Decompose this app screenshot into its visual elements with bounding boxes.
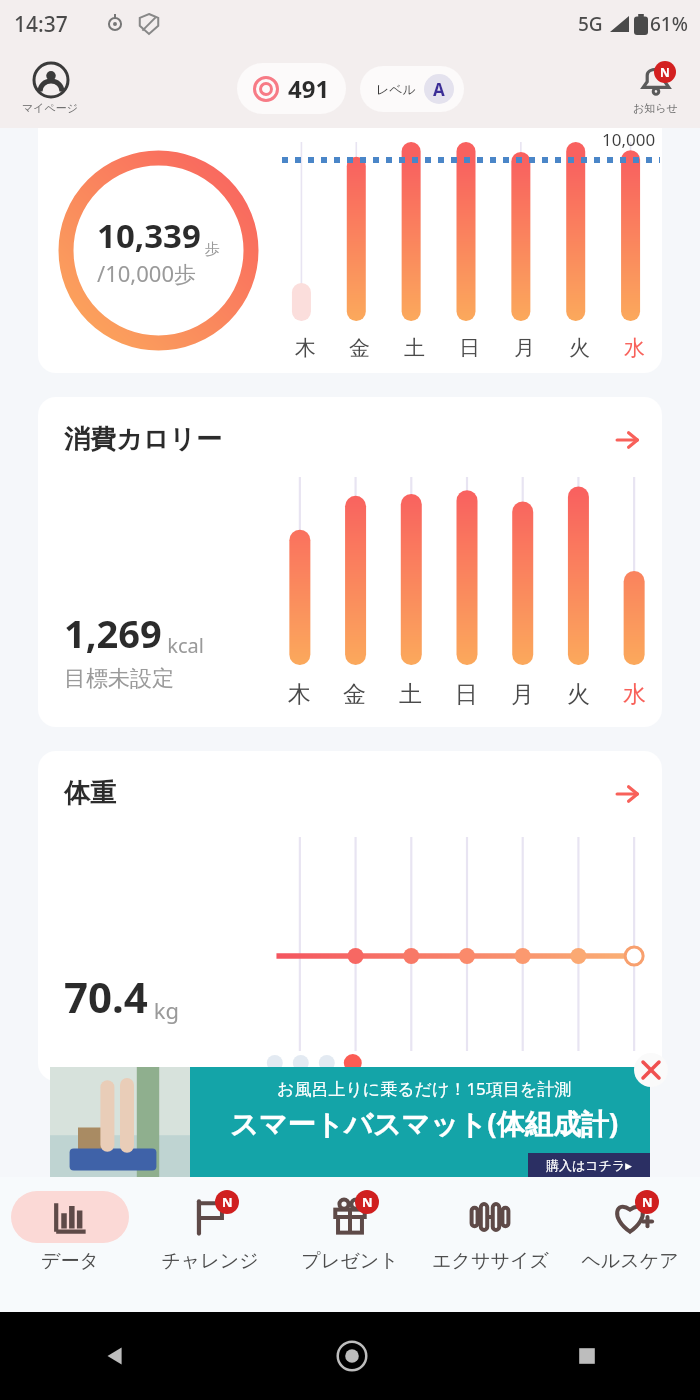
staticText: N [660, 64, 670, 80]
button[interactable]: Recents [574, 1343, 600, 1369]
button[interactable]: 体重 [38, 751, 662, 1081]
staticText: お知らせ [633, 101, 678, 115]
staticText: 61% [650, 11, 688, 37]
staticText: データ [41, 1249, 99, 1273]
staticText: N [642, 1193, 653, 1211]
staticText: kg [148, 995, 179, 1025]
button[interactable]: 10,339 [38, 128, 662, 373]
staticText: 購入はコチラ▸ [546, 1157, 632, 1173]
staticText: 火 [569, 335, 590, 361]
staticText: N [222, 1193, 233, 1211]
staticText: 金 [349, 335, 370, 361]
staticText: レベル [376, 81, 416, 97]
staticText: スマートバスマット(体組成計) [230, 1104, 619, 1142]
staticText: 水 [623, 680, 646, 709]
staticText: 目標未設定 [64, 665, 174, 693]
staticText: 日 [455, 680, 478, 709]
staticText: 水 [624, 335, 645, 361]
staticText: 消費カロリー [64, 423, 222, 456]
staticText: 14:37 [14, 10, 68, 39]
staticText: 10,000 [602, 128, 656, 151]
staticText: 火 [567, 680, 590, 709]
button[interactable]: N [560, 1177, 700, 1312]
staticText: 月 [511, 680, 534, 709]
staticText: 土 [404, 335, 425, 361]
button[interactable]: レベル [360, 66, 464, 112]
button[interactable]: 491 [237, 63, 346, 114]
button[interactable]: N [140, 1177, 280, 1312]
other: 詳細 [614, 781, 640, 807]
staticText: 月 [514, 335, 535, 361]
staticText: 歩 [201, 238, 220, 258]
button[interactable]: お風呂上りに乗るだけ！15項目を計測 [50, 1067, 650, 1177]
staticText: ヘルスケア [581, 1249, 679, 1273]
staticText: 491 [288, 72, 330, 105]
staticText: 木 [288, 680, 311, 709]
staticText: エクササイズ [432, 1249, 549, 1273]
staticText: 金 [343, 680, 366, 709]
staticText: 木 [295, 335, 316, 361]
staticText: 体重 [64, 777, 116, 810]
button[interactable]: N [280, 1177, 420, 1312]
staticText: プレゼント [301, 1249, 399, 1273]
staticText: N [362, 1193, 373, 1211]
button[interactable]: エクササイズ [420, 1177, 560, 1312]
button[interactable]: Back [100, 1341, 130, 1371]
staticText: チャレンジ [161, 1249, 259, 1273]
button[interactable]: マイページ [18, 57, 83, 119]
button[interactable]: お知らせ [629, 57, 682, 119]
button[interactable]: Home [335, 1339, 369, 1373]
button[interactable]: 閉じる [634, 1053, 668, 1087]
staticText: /10,000歩 [97, 258, 197, 288]
staticText: 70.4 [64, 968, 148, 1025]
other: 詳細 [614, 427, 640, 453]
staticText: A [433, 78, 445, 101]
staticText: kcal [162, 632, 204, 659]
button[interactable]: 消費カロリー [38, 397, 662, 727]
staticText: マイページ [22, 101, 79, 115]
staticText: 日 [459, 335, 480, 361]
staticText: 1,269 [64, 607, 162, 659]
button[interactable]: データ [0, 1177, 140, 1312]
staticText: 土 [399, 680, 422, 709]
staticText: お風呂上りに乗るだけ！15項目を計測 [277, 1077, 572, 1100]
staticText: 10,339 [97, 213, 201, 258]
staticText: 5G [578, 11, 603, 37]
